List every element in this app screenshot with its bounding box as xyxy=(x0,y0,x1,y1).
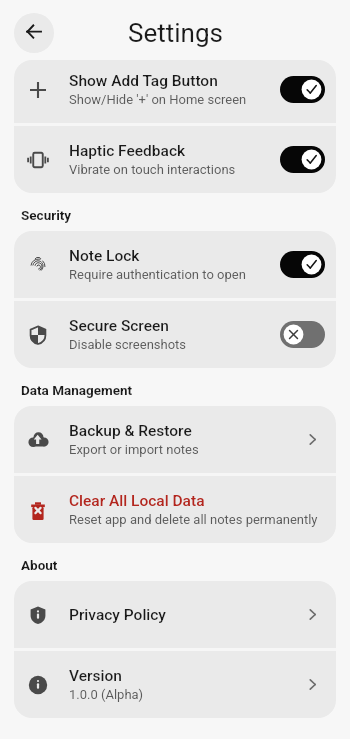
button[interactable]: Clear All Local Data xyxy=(14,476,336,543)
staticText: Version xyxy=(69,667,122,685)
button[interactable]: Haptic Feedback xyxy=(14,126,336,193)
button[interactable]: Enabled toggle xyxy=(280,146,325,173)
staticText: Secure Screen xyxy=(69,317,169,335)
button[interactable]: Back xyxy=(14,13,54,53)
button[interactable]: Disabled toggle xyxy=(280,321,325,348)
staticText: 1.0.0 (Alpha) xyxy=(69,687,144,702)
button[interactable]: Enabled toggle xyxy=(280,251,325,278)
button[interactable]: Backup & Restore xyxy=(14,406,336,473)
staticText: Data Management xyxy=(21,382,133,398)
staticText: Backup & Restore xyxy=(69,422,192,440)
button[interactable]: Enabled toggle xyxy=(280,76,325,103)
staticText: About xyxy=(21,557,58,573)
staticText: Privacy Policy xyxy=(69,606,166,624)
staticText: Clear All Local Data xyxy=(69,492,205,510)
staticText: Reset app and delete all notes permanent… xyxy=(69,512,318,527)
staticText: Show Add Tag Button xyxy=(69,72,218,90)
staticText: Require authentication to open xyxy=(69,267,246,282)
staticText: Vibrate on touch interactions xyxy=(69,162,236,177)
staticText: Disable screenshots xyxy=(69,337,187,352)
button[interactable]: Note Lock xyxy=(14,231,336,298)
staticText: Haptic Feedback xyxy=(69,142,186,160)
staticText: Security xyxy=(21,207,72,223)
staticText: Settings xyxy=(128,18,223,48)
button[interactable]: Secure Screen xyxy=(14,301,336,368)
staticText: Export or import notes xyxy=(69,442,199,457)
button[interactable]: Show Add Tag Button xyxy=(14,60,336,123)
staticText: Note Lock xyxy=(69,247,140,265)
button[interactable]: Privacy Policy xyxy=(14,581,336,648)
staticText: Show/Hide '+' on Home screen xyxy=(69,92,247,107)
button[interactable]: Version xyxy=(14,651,336,718)
